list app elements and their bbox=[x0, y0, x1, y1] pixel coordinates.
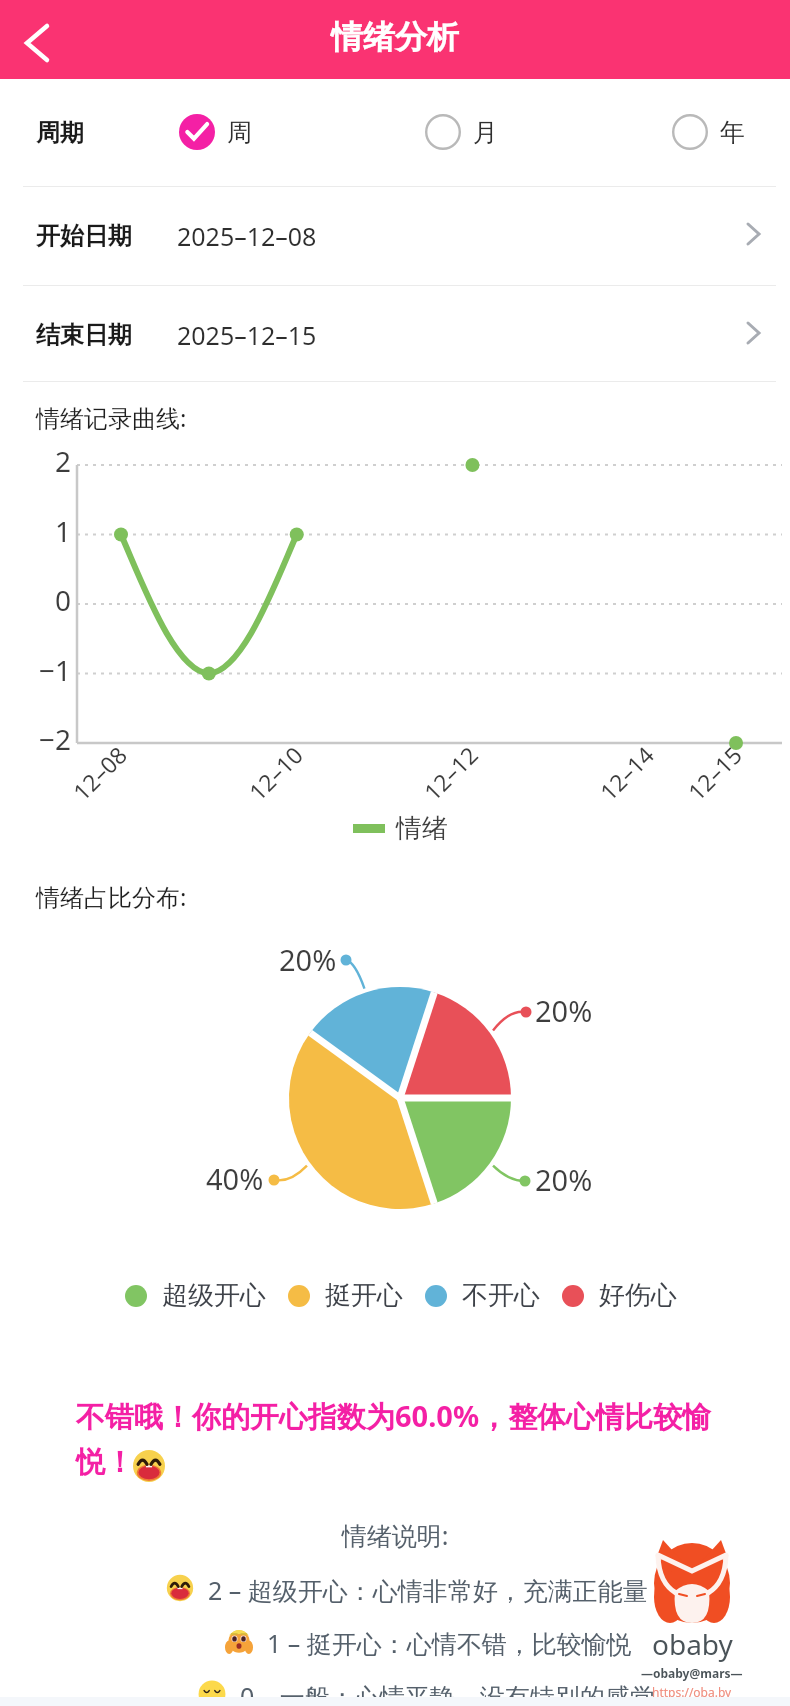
button[interactable]: Back bbox=[8, 11, 66, 69]
staticText: 12–15 bbox=[681, 739, 748, 806]
staticText: 12–10 bbox=[242, 739, 309, 806]
staticText: 1 bbox=[17, 512, 71, 550]
staticText: 12–12 bbox=[417, 739, 484, 806]
staticText: 悦！ bbox=[76, 1444, 134, 1481]
button[interactable]: 年 bbox=[672, 114, 745, 150]
button[interactable]: 挺开心 bbox=[288, 1279, 403, 1312]
staticText: 2 – 超级开心：心情非常好，充满正能量 bbox=[208, 1573, 648, 1607]
staticText: 2 bbox=[17, 442, 71, 480]
staticText: −1 bbox=[17, 651, 71, 689]
staticText: 1 – 挺开心：心情不错，比较愉悦 bbox=[267, 1626, 632, 1660]
staticText: 情绪 bbox=[396, 812, 448, 845]
staticText: https://oba.by bbox=[652, 1684, 732, 1700]
staticText: 12–14 bbox=[593, 739, 660, 806]
button[interactable]: 开始日期 bbox=[0, 187, 790, 285]
staticText: 挺开心 bbox=[325, 1279, 403, 1312]
staticText: 情绪占比分布: bbox=[36, 880, 187, 913]
staticText: 20% bbox=[535, 991, 593, 1030]
staticText: 开始日期 bbox=[36, 221, 132, 251]
staticText: 年 bbox=[720, 117, 745, 148]
staticText: 好伤心 bbox=[599, 1279, 677, 1312]
staticText: —obaby@mars— bbox=[641, 1665, 743, 1681]
staticText: 12–08 bbox=[66, 739, 133, 806]
staticText: 情绪分析 bbox=[331, 17, 459, 57]
staticText: 结束日期 bbox=[36, 320, 132, 350]
staticText: 情绪说明: bbox=[0, 1518, 790, 1552]
staticText: 不开心 bbox=[462, 1279, 540, 1312]
button[interactable]: 好伤心 bbox=[562, 1279, 677, 1312]
staticText: obaby bbox=[652, 1625, 733, 1663]
button[interactable]: 不开心 bbox=[425, 1279, 540, 1312]
staticText: 20% bbox=[279, 940, 337, 979]
staticText: 20% bbox=[535, 1160, 593, 1199]
button[interactable]: 月 bbox=[425, 114, 498, 150]
staticText: 月 bbox=[473, 117, 498, 148]
staticText: 2025–12–08 bbox=[177, 219, 317, 253]
staticText: −2 bbox=[17, 720, 71, 758]
staticText: 0 – 一般：心情平静，没有特别的感觉 bbox=[240, 1679, 655, 1706]
staticText: 0 bbox=[17, 581, 71, 619]
button[interactable]: 结束日期 bbox=[0, 286, 790, 384]
button[interactable]: 超级开心 bbox=[125, 1279, 266, 1312]
staticText: 超级开心 bbox=[162, 1279, 266, 1312]
staticText: 周 bbox=[227, 117, 252, 148]
staticText: 情绪记录曲线: bbox=[36, 401, 187, 434]
staticText: 2025–12–15 bbox=[177, 318, 317, 352]
button[interactable]: 周 bbox=[179, 114, 252, 150]
staticText: 不错哦！你的开心指数为60.0%，整体心情比较愉 bbox=[76, 1396, 712, 1436]
staticText: 周期 bbox=[36, 118, 84, 148]
staticText: 40% bbox=[206, 1159, 264, 1198]
